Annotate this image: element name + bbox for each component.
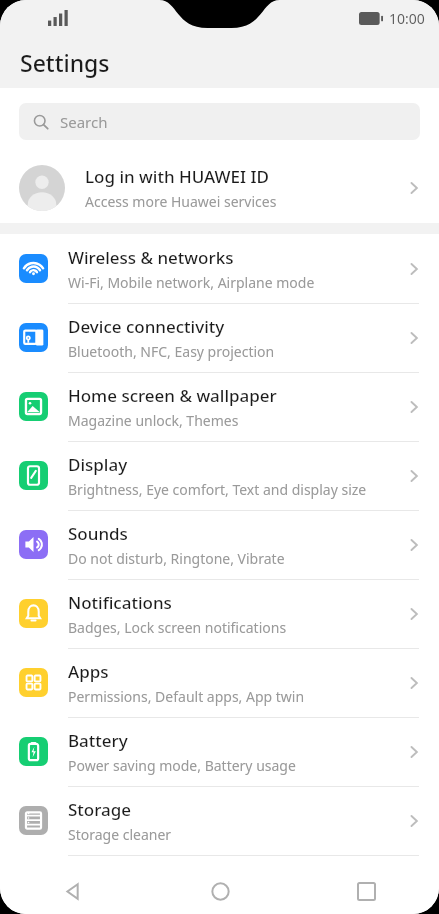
button[interactable]: Storage: [0, 786, 439, 855]
button[interactable]: Back: [0, 868, 147, 914]
staticText: Permissions, Default apps, App twin: [68, 687, 305, 706]
staticText: Display: [68, 453, 128, 476]
staticText: Sounds: [68, 522, 128, 545]
staticText: Power saving mode, Battery usage: [68, 756, 296, 775]
staticText: Device connectivity: [68, 315, 225, 338]
button[interactable]: Recents: [293, 868, 439, 914]
staticText: Settings: [20, 47, 110, 78]
staticText: Wireless & networks: [68, 246, 234, 269]
staticText: Home screen & wallpaper: [68, 384, 277, 407]
staticText: 10:00: [389, 9, 425, 28]
button[interactable]: Wireless & networks: [0, 234, 439, 303]
staticText: Access more Huawei services: [85, 192, 277, 211]
staticText: Search: [60, 112, 108, 132]
button[interactable]: Digital balance: [0, 855, 439, 914]
staticText: Log in with HUAWEI ID: [85, 165, 269, 188]
staticText: Badges, Lock screen notifications: [68, 618, 287, 637]
staticText: Do not disturb, Ringtone, Vibrate: [68, 549, 285, 568]
button[interactable]: Notifications: [0, 579, 439, 648]
button[interactable]: Log in with HUAWEI ID: [0, 154, 439, 222]
button[interactable]: Search: [19, 103, 420, 140]
button[interactable]: Home: [147, 868, 293, 914]
staticText: Bluetooth, NFC, Easy projection: [68, 342, 275, 361]
button[interactable]: Display: [0, 441, 439, 510]
button[interactable]: Sounds: [0, 510, 439, 579]
staticText: Storage cleaner: [68, 825, 172, 844]
staticText: Notifications: [68, 591, 172, 614]
button[interactable]: Battery: [0, 717, 439, 786]
staticText: Wi-Fi, Mobile network, Airplane mode: [68, 273, 315, 292]
button[interactable]: Apps: [0, 648, 439, 717]
staticText: Brightness, Eye comfort, Text and displa…: [68, 480, 367, 499]
staticText: Magazine unlock, Themes: [68, 411, 239, 430]
button[interactable]: Home screen & wallpaper: [0, 372, 439, 441]
staticText: Apps: [68, 660, 109, 683]
staticText: Storage: [68, 798, 132, 821]
staticText: Screen time management: [68, 889, 238, 908]
button[interactable]: Device connectivity: [0, 303, 439, 372]
staticText: Battery: [68, 729, 128, 752]
